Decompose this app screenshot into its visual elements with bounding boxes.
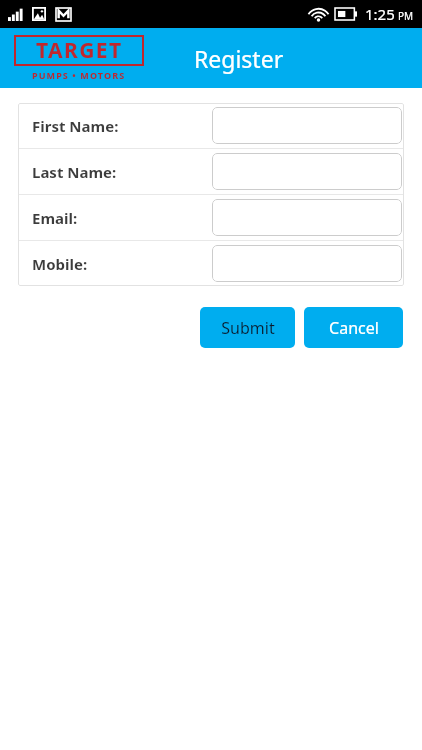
button[interactable]: Email: (18, 195, 404, 240)
staticText: 1:25 (365, 4, 395, 24)
button[interactable]: Last Name input (212, 153, 402, 190)
button[interactable]: Mobile input (212, 245, 402, 282)
staticText: PM (398, 9, 414, 23)
button[interactable]: Mobile: (18, 241, 404, 286)
staticText: Email: (32, 208, 212, 228)
button[interactable]: Submit (200, 307, 295, 348)
staticText: Mobile: (32, 254, 212, 274)
staticText: Register (194, 43, 284, 74)
button[interactable]: First Name input (212, 107, 402, 144)
staticText: First Name: (32, 116, 212, 136)
staticText: Submit (221, 317, 275, 339)
button[interactable]: Email input (212, 199, 402, 236)
staticText: TARGET (36, 36, 123, 65)
staticText: Cancel (329, 317, 379, 339)
button[interactable]: Target Pumps Motors logo (14, 35, 144, 81)
button[interactable]: Last Name: (18, 149, 404, 194)
staticText: PUMPS • MOTORS (32, 69, 126, 81)
staticText: Last Name: (32, 162, 212, 182)
button[interactable]: Cancel (304, 307, 403, 348)
button[interactable]: First Name: (18, 103, 404, 148)
